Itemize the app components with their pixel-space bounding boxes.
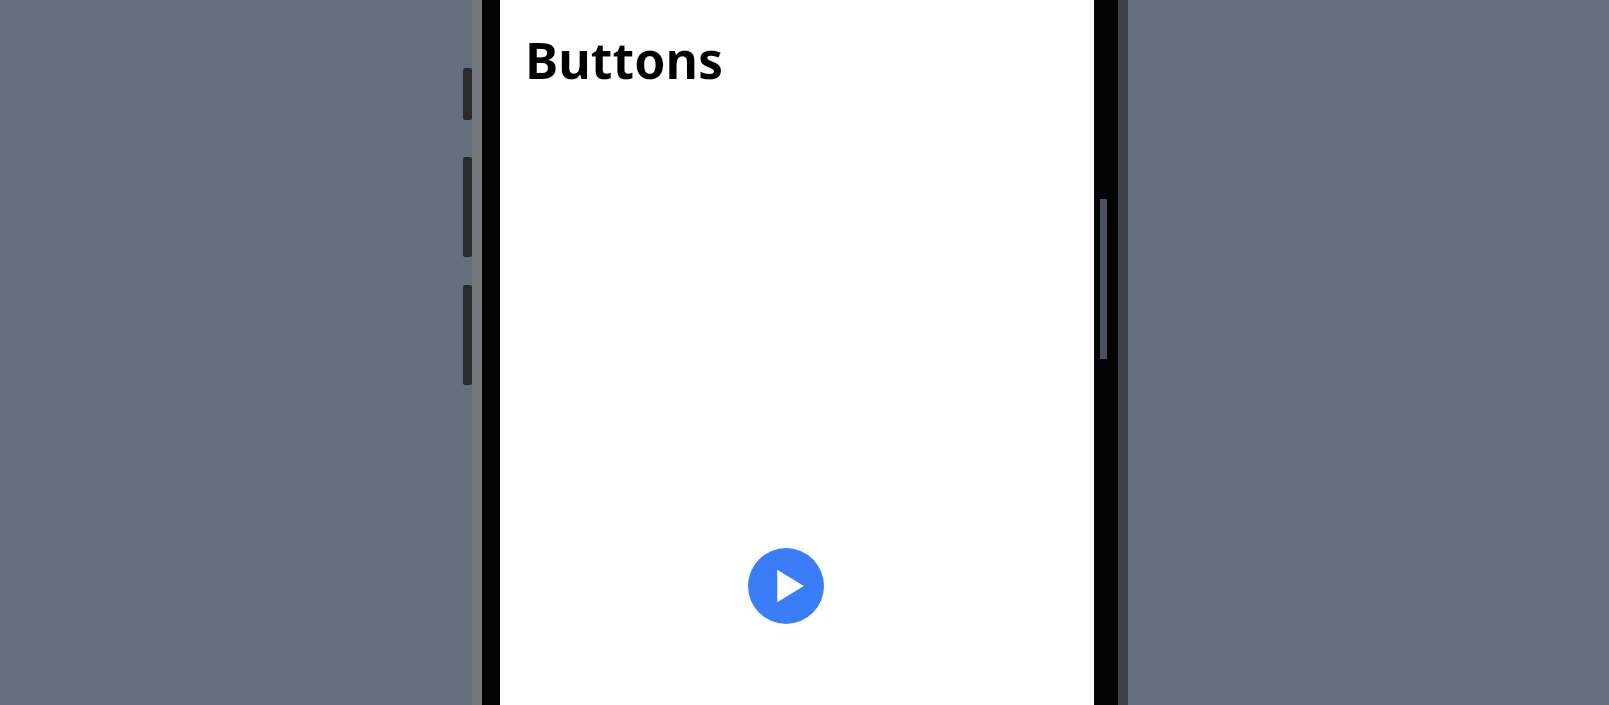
staticText: Buttons <box>525 26 723 94</box>
button[interactable]: Play <box>748 548 824 624</box>
